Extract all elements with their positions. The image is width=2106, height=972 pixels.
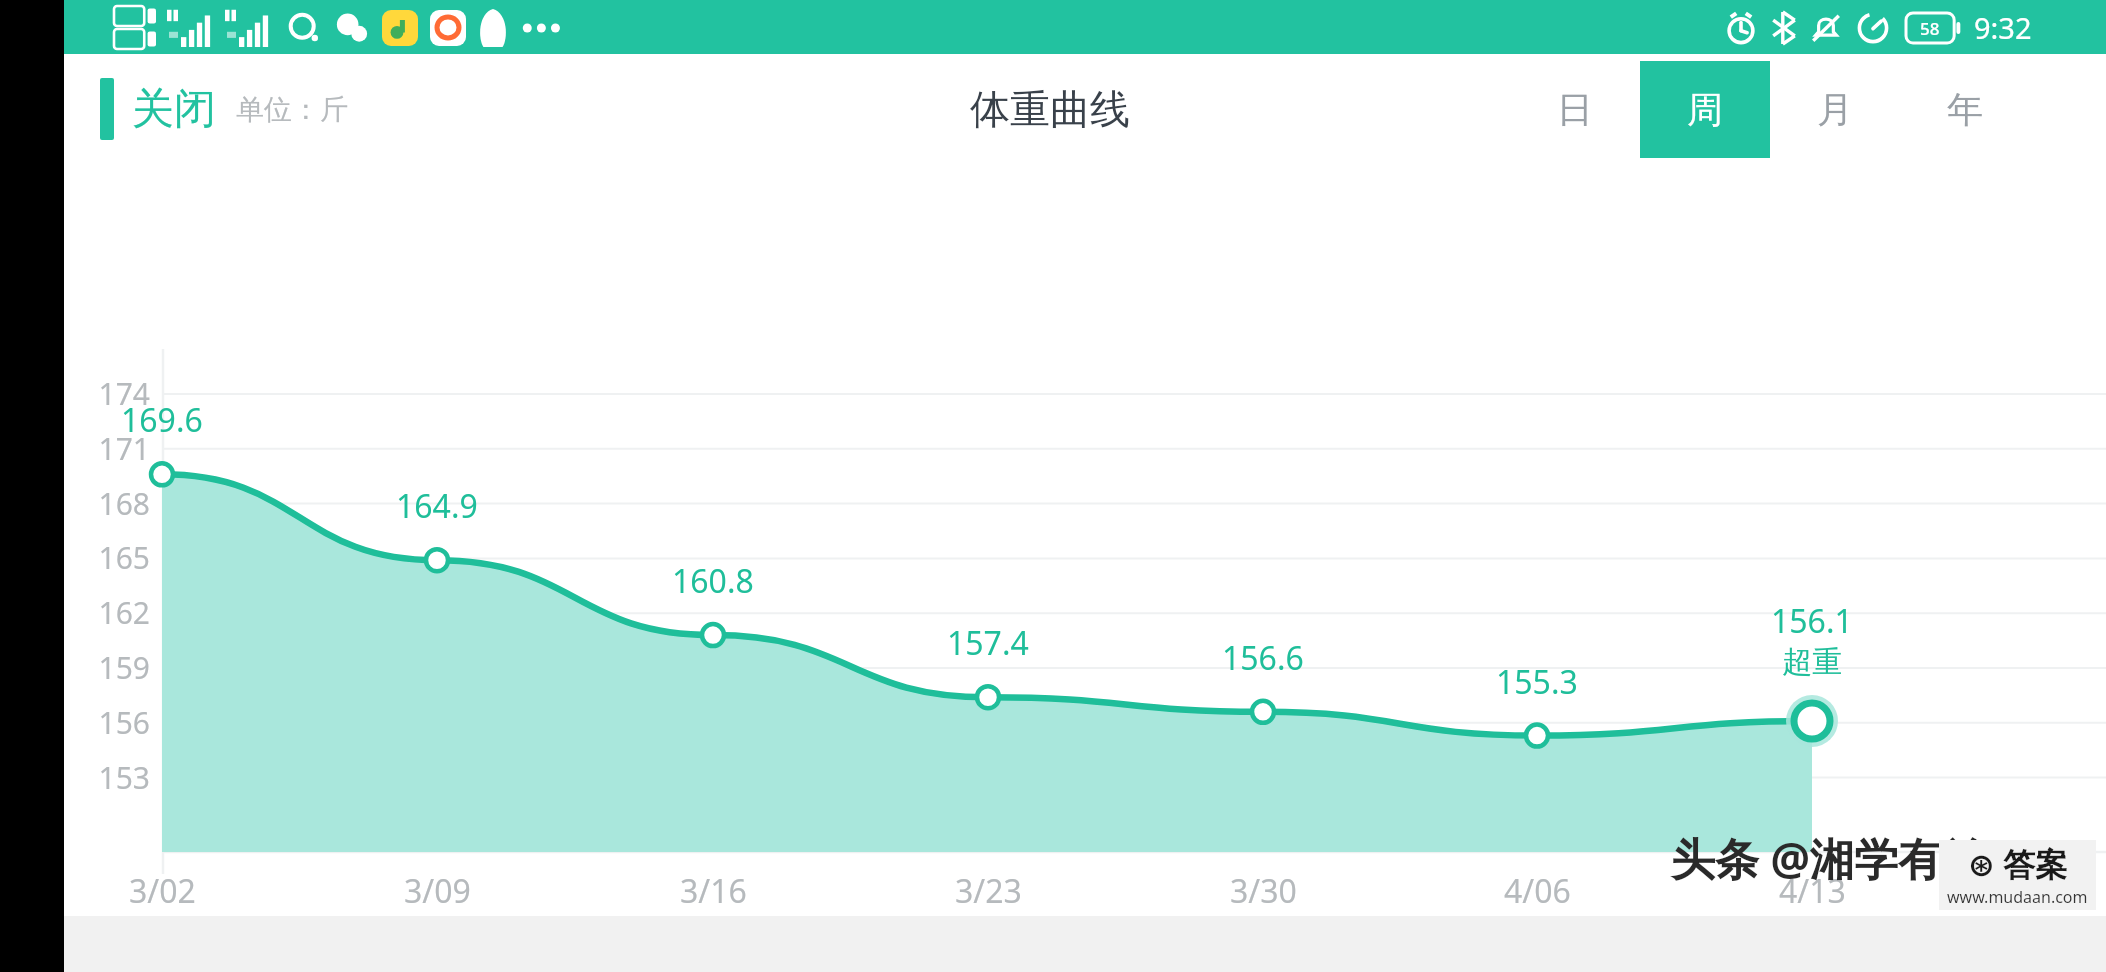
staticText: ⊛ 答案 (1968, 842, 2068, 886)
staticText: 周 (1687, 87, 1723, 132)
staticText: 体重曲线 (970, 84, 1130, 134)
staticText: 关闭 (132, 83, 216, 136)
staticText: www.mudaan.com (1947, 886, 2088, 908)
button[interactable]: 周 (1640, 61, 1770, 158)
staticText: 单位：斤 (236, 92, 348, 127)
staticText: 156.6 (1222, 636, 1304, 680)
button[interactable]: 年 (1900, 61, 2030, 158)
staticText: 4/13 (1779, 869, 1846, 913)
staticText: 156.1 (1771, 599, 1853, 643)
staticText: 3/16 (680, 869, 747, 913)
staticText: 165 (78, 537, 150, 578)
button[interactable]: 关闭 (100, 78, 348, 140)
staticText: 162 (78, 592, 150, 633)
staticText: 169.6 (121, 398, 203, 442)
staticText: 159 (78, 647, 150, 688)
staticText: 头条 @湘学有益 (1671, 828, 1986, 888)
staticText: 164.9 (396, 484, 478, 528)
staticText: 155.3 (1496, 660, 1578, 704)
staticText: 9:32 (1974, 8, 2032, 47)
staticText: 3/23 (955, 869, 1022, 913)
staticText: 160.8 (672, 559, 754, 603)
button[interactable]: 月 (1770, 61, 1900, 158)
staticText: 157.4 (947, 621, 1029, 665)
staticText: 168 (78, 483, 150, 524)
staticText: 3/30 (1230, 869, 1297, 913)
staticText: 年 (1947, 87, 1983, 132)
staticText: 171 (78, 428, 150, 469)
staticText: 超重 (1782, 643, 1842, 681)
staticText: 日 (1557, 87, 1593, 132)
staticText: 4/06 (1504, 869, 1571, 913)
staticText: 3/09 (404, 869, 471, 913)
staticText: 3/02 (129, 869, 196, 913)
staticText: 153 (78, 757, 150, 798)
staticText: 174 (78, 373, 150, 414)
staticText: 156 (78, 702, 150, 743)
button[interactable]: 日 (1510, 61, 1640, 158)
staticText: 月 (1817, 87, 1853, 132)
staticText: 58 (1920, 17, 1940, 40)
